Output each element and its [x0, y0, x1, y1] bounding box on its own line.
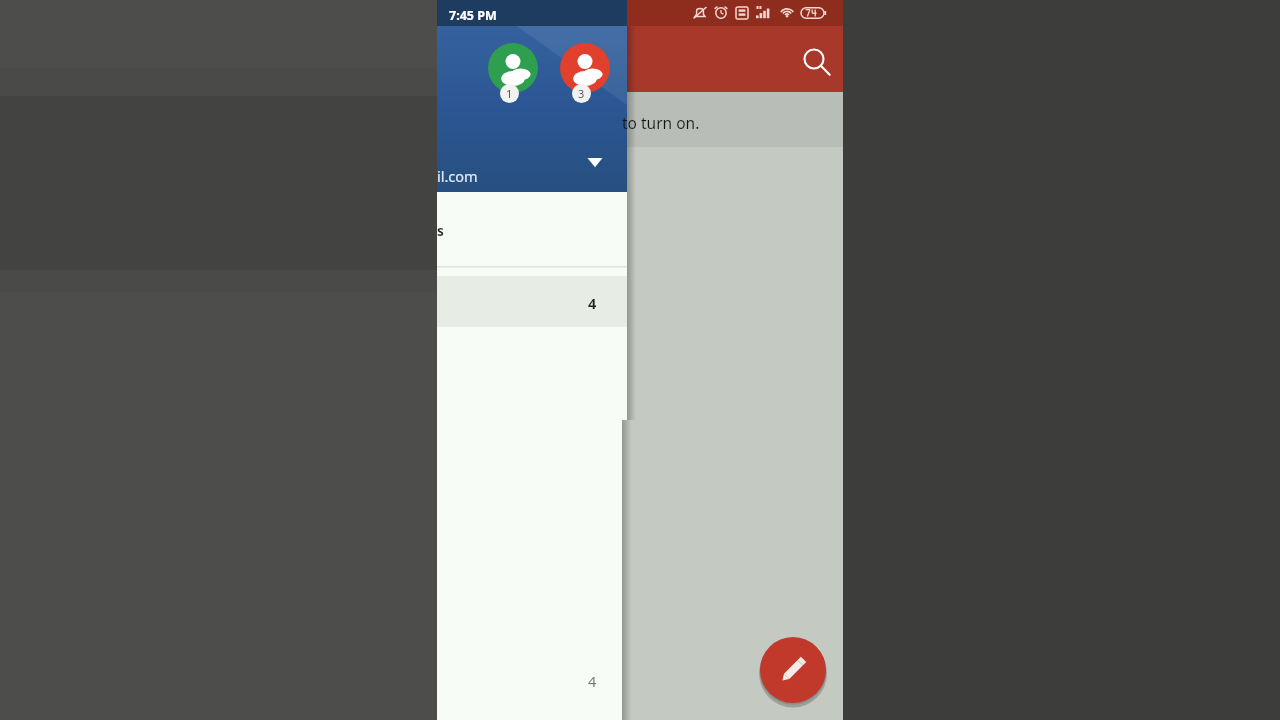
staticText: 1 — [506, 86, 513, 101]
button[interactable]: Account header — [437, 26, 627, 192]
button[interactable]: Account 1 — [488, 43, 538, 93]
button[interactable]: Account 3 — [560, 43, 610, 93]
staticText: il.com — [437, 166, 478, 186]
staticText: to turn on. — [622, 112, 700, 133]
staticText: 3 — [578, 86, 585, 101]
button[interactable] — [437, 192, 627, 267]
button[interactable]: Expand account list — [560, 140, 627, 185]
staticText: 4 — [588, 293, 597, 313]
staticText: 7:45 PM — [449, 7, 497, 24]
staticText: s — [437, 222, 444, 240]
button[interactable]: Search — [780, 45, 836, 90]
button[interactable] — [437, 276, 627, 327]
button[interactable]: Compose — [760, 637, 826, 703]
button[interactable] — [437, 650, 622, 696]
staticText: 4 — [588, 671, 597, 691]
